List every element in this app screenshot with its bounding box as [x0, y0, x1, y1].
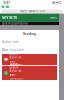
button[interactable]: Tab 2: [6, 5, 9, 8]
staticText: amet consectetur: [9, 73, 23, 84]
staticText: ıII ╤ ▯: [52, 0, 61, 5]
staticText: More copy here: [2, 48, 24, 52]
staticText: Heading: [23, 32, 36, 36]
staticText: MYSITE: [2, 15, 17, 20]
button[interactable]: mysite.example.com: [0, 10, 64, 13]
staticText: Section title: [2, 40, 19, 44]
button[interactable]: Lorem ipsum dolor sit: [2, 66, 57, 80]
staticText: mysite.example.com: [19, 9, 44, 13]
button[interactable]: Lorem ipsum dolor sit: [2, 54, 57, 65]
button[interactable]: Tab 1: [1, 5, 4, 8]
staticText: Lorem ipsum dolor sit: [9, 62, 21, 73]
staticText: 9:41: [3, 0, 10, 5]
staticText: amet consectetur: [9, 60, 23, 70]
button[interactable]: MENU: [50, 16, 57, 19]
staticText: Lorem ipsum dolor: [2, 22, 28, 25]
staticText: MENU: [50, 16, 57, 19]
staticText: Lorem ipsum dolor sit: [9, 49, 21, 59]
